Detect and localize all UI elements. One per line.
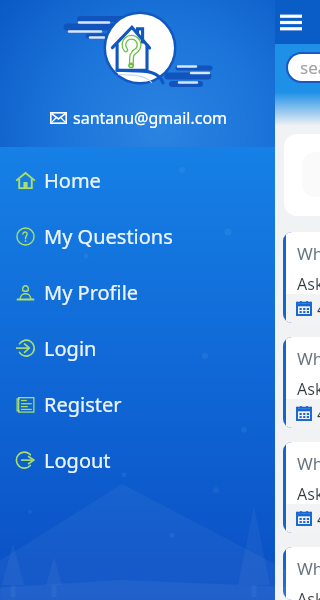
staticText: santanu@gmail.com [73, 107, 228, 129]
staticText: Where to find th [297, 557, 320, 580]
button[interactable]: Where to find th [283, 232, 320, 323]
staticText: Asked by [297, 483, 320, 504]
button[interactable]: Where to find th [283, 442, 320, 533]
staticText: Where to find th [297, 452, 320, 475]
staticText: 4 days ago [317, 508, 320, 530]
staticText: 4 days ago [317, 298, 320, 320]
staticText: Asked by [297, 588, 320, 600]
staticText: Login [44, 335, 97, 362]
staticText: My Questions [44, 223, 173, 250]
staticText: Asked by [297, 378, 320, 399]
staticText: Where to find th [297, 242, 320, 265]
button[interactable]: Logout [0, 432, 275, 488]
staticText: Where to find th [297, 347, 320, 370]
button[interactable]: Where to find th [283, 337, 320, 428]
button[interactable]: Open navigation drawer [276, 7, 306, 37]
staticText: Logout [44, 447, 111, 474]
staticText: My Profile [44, 279, 139, 306]
button[interactable]: Where to find th [283, 547, 320, 600]
staticText: search... [300, 56, 320, 79]
button[interactable]: My Profile [0, 264, 275, 320]
button[interactable]: Home [0, 152, 275, 208]
staticText: Asked by [297, 273, 320, 294]
button[interactable]: Register [0, 376, 275, 432]
staticText: Register [44, 391, 122, 418]
button[interactable]: My Questions [0, 208, 275, 264]
button[interactable]: Login [0, 320, 275, 376]
staticText: Home [44, 167, 101, 194]
staticText: 4 days ago [317, 403, 320, 425]
button[interactable]: search... [288, 54, 320, 81]
